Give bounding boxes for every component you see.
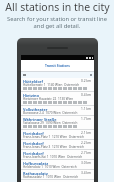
button[interactable]: Hietzing	[21, 92, 94, 106]
staticText: Search for your station or transit line …	[7, 15, 107, 30]
staticText: Währinger Straße	[23, 117, 57, 121]
button[interactable]: Floridsdorf	[21, 130, 94, 140]
staticText: 0.4 km	[81, 93, 92, 97]
staticText: Burggasse 2-4, 1070 Wien, Österreich	[23, 111, 78, 114]
staticText: Franz-Jonas-Platz 1, 1210 Wien, Österrei…	[23, 135, 84, 138]
button[interactable]: Floridsdorf	[21, 150, 94, 160]
staticText: 2.1 km	[81, 131, 92, 135]
staticText: Franz-Josefs-Kai 1, 1010 Wien, Österreic…	[23, 155, 83, 158]
staticText: Transit Stations	[45, 64, 70, 68]
staticText: Rathausplatz	[23, 171, 48, 175]
staticText: Franz-Jonas-Platz 3, 1210 Wien, Österrei…	[23, 145, 84, 148]
button[interactable]: Währinger Straße	[21, 116, 94, 130]
staticText: All stations in the city	[5, 0, 110, 14]
staticText: 3.0 km	[81, 161, 92, 165]
button[interactable]: Rathausplatz	[21, 170, 94, 180]
button[interactable]: Hofburgplatz	[21, 160, 94, 170]
staticText: Heldenplatz 1, 1010 Wien, Österreich	[23, 165, 77, 168]
staticText: Floridsdorf	[23, 141, 44, 145]
button[interactable]: Transit Stations	[21, 60, 94, 71]
staticText: Hütteldorf	[23, 79, 44, 83]
staticText: Rathausplatz 1, 1010 Wien, Österreich	[23, 175, 79, 178]
staticText: 0.2 km	[81, 79, 92, 83]
staticText: 3.4 km	[81, 171, 92, 175]
button[interactable]: Search	[21, 71, 94, 78]
staticText: Hüttelbergstr. 1, 1140 Wien, Österreich	[23, 83, 80, 86]
button[interactable]: Volkstheater	[21, 106, 94, 116]
staticText: 1.7 km	[81, 117, 92, 121]
staticText: Floridsdorf	[23, 131, 44, 135]
staticText: 2.7 km	[81, 151, 92, 155]
staticText: Hietzing	[23, 93, 39, 97]
staticText: Volkstheater	[23, 107, 48, 111]
button[interactable]: Hütteldorf	[21, 78, 94, 92]
staticText: 2.2 km	[81, 141, 92, 145]
staticText: 1.1 km	[81, 107, 92, 111]
button[interactable]: Floridsdorf	[21, 140, 94, 150]
staticText: Hofburgplatz	[23, 161, 48, 165]
staticText: Hietzinger Hauptstr. 22, 1130 Wien	[23, 97, 74, 100]
staticText: Floridsdorf	[23, 151, 44, 155]
staticText: Spitalgasse 29, 1090 Wien, Österreich	[23, 121, 78, 124]
